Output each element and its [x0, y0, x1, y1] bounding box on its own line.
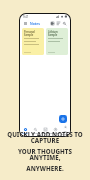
button[interactable]: Checklists	[40, 126, 50, 136]
staticText: QUICKLY ADD NOTES TO CAPTURE	[2, 130, 88, 145]
staticText: Notes	[22, 132, 28, 135]
staticText: Lithium Sample	[48, 30, 66, 36]
staticText: Notes	[30, 21, 40, 26]
staticText: ANYWHERE.	[26, 164, 64, 172]
button[interactable]: Reminders	[50, 126, 60, 136]
button[interactable]: Notes	[20, 126, 30, 136]
button[interactable]: Search	[30, 126, 40, 136]
button[interactable]: Sort	[56, 21, 61, 26]
staticText: Search	[32, 132, 38, 135]
button[interactable]: My Account	[60, 126, 70, 136]
button[interactable]: Menu	[23, 21, 28, 26]
button[interactable]: Grid view	[50, 21, 55, 26]
button[interactable]: Search	[62, 21, 67, 26]
staticText: Personal Sample	[24, 30, 42, 36]
button[interactable]: Add note	[59, 115, 67, 123]
button[interactable]: Personal Sample	[22, 28, 44, 55]
staticText: YOUR THOUGHTS ANYTIME,	[2, 147, 88, 162]
staticText: Reminders	[50, 132, 60, 135]
staticText: 9:41	[23, 15, 29, 19]
staticText: My Account	[60, 130, 70, 136]
button[interactable]: Lithium Sample	[46, 28, 68, 55]
staticText: Checklists	[41, 132, 50, 135]
